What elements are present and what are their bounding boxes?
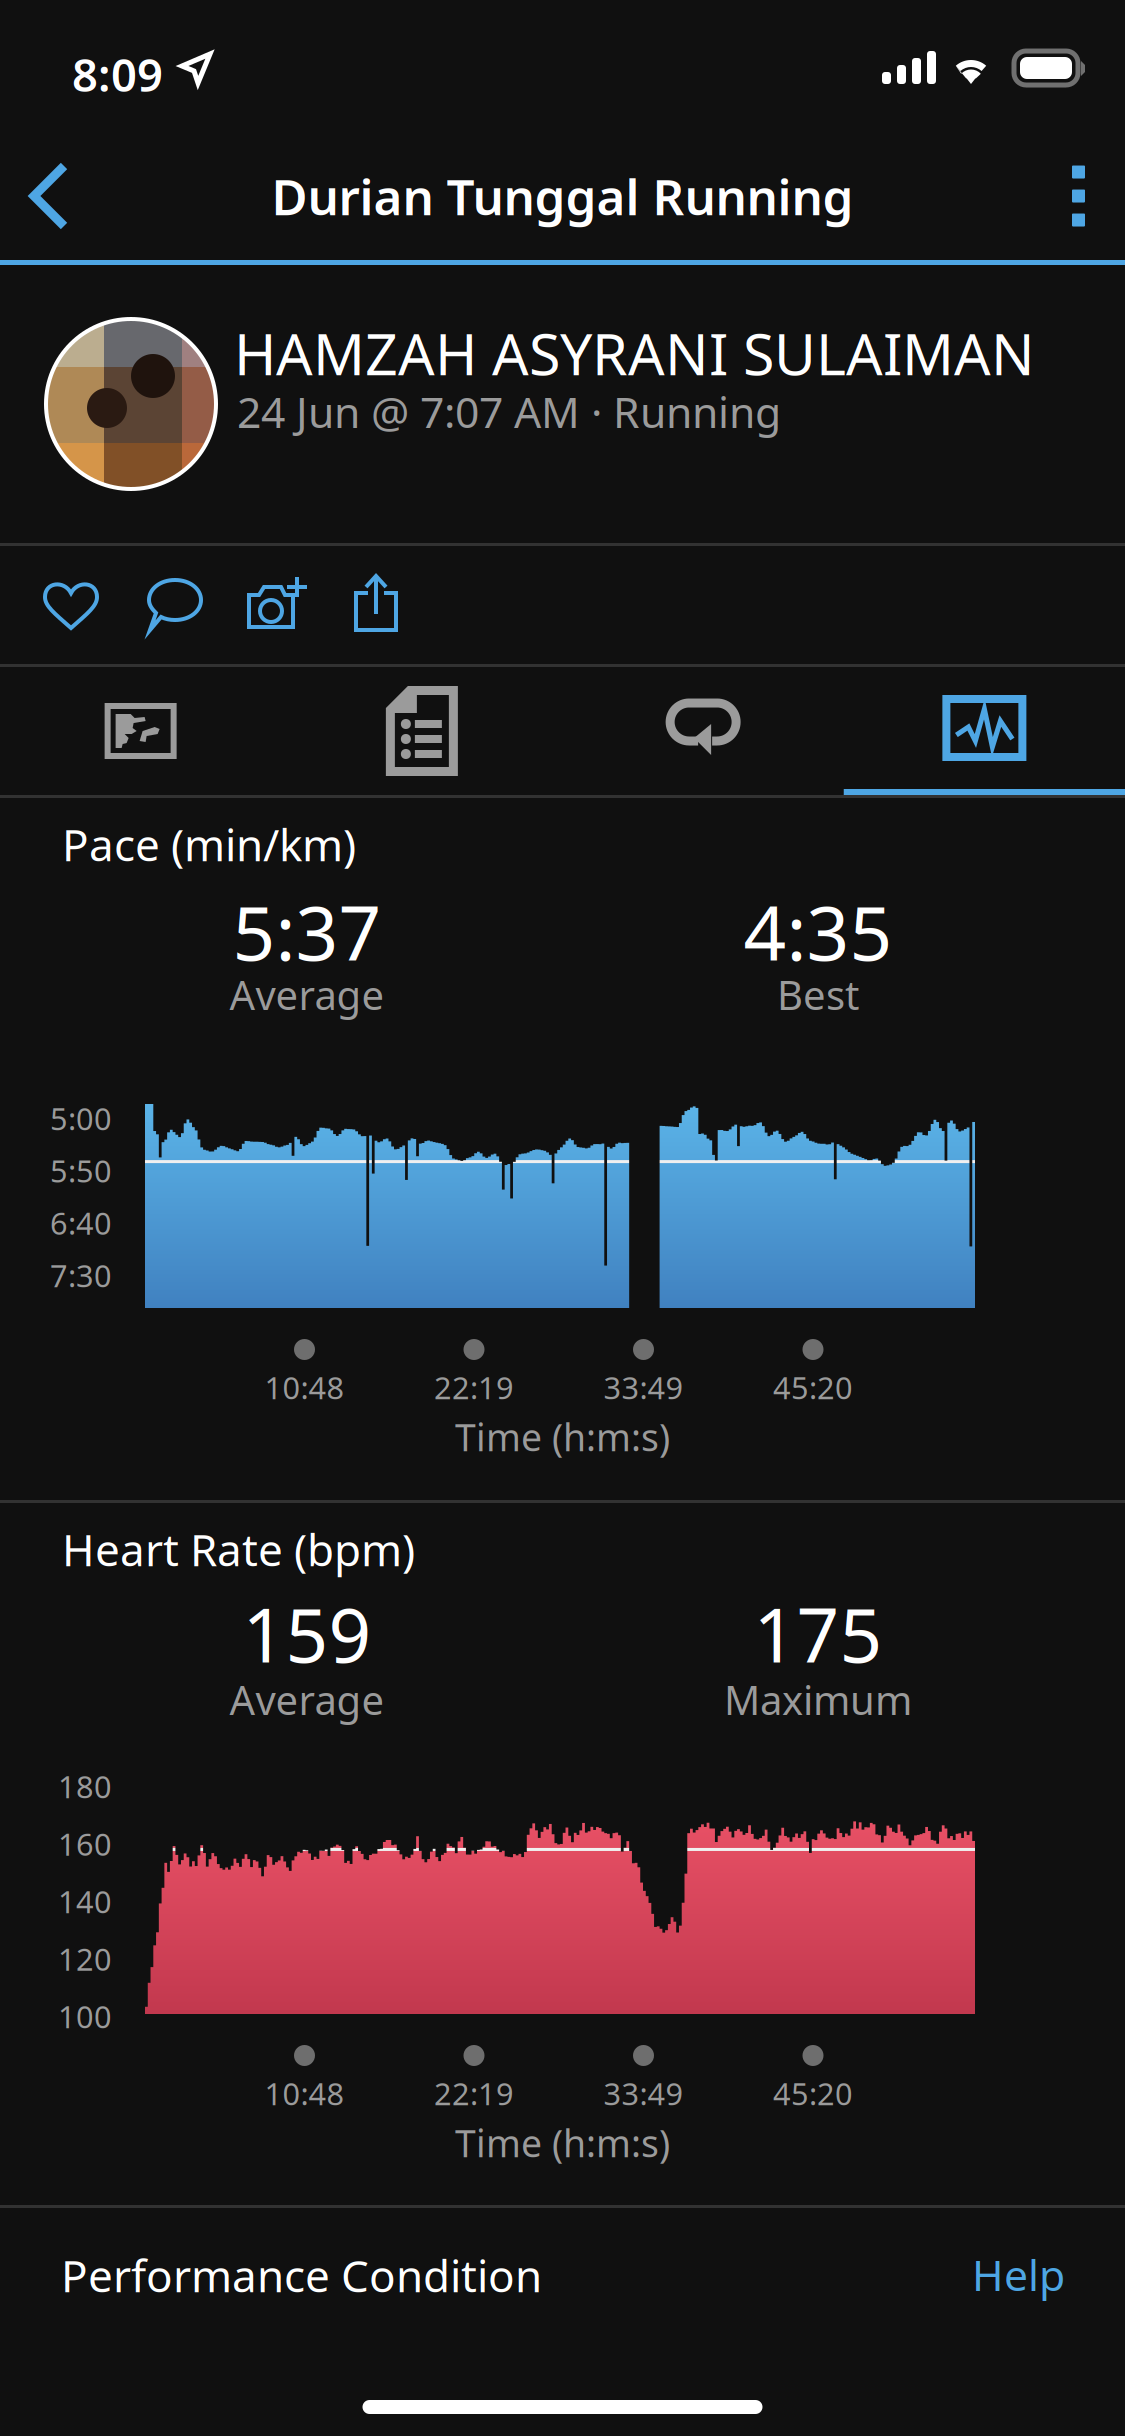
staticText: 180 <box>58 1766 112 1807</box>
button[interactable]: Splits <box>281 667 562 795</box>
button[interactable]: Share <box>0 546 44 604</box>
button[interactable]: Back <box>0 134 96 258</box>
staticText: Best <box>777 968 859 1021</box>
staticText: 6:40 <box>50 1203 112 1243</box>
staticText: Pace (min/km) <box>62 815 356 873</box>
staticText: 10:48 <box>264 2073 344 2114</box>
staticText: 5:37 <box>232 882 381 981</box>
staticText: 22:19 <box>434 2073 514 2114</box>
button[interactable]: Comment <box>0 546 60 602</box>
button[interactable]: Laps <box>562 667 844 795</box>
staticText: 140 <box>58 1881 112 1922</box>
button[interactable]: Help <box>0 2208 120 2265</box>
staticText: 8:09 <box>72 44 163 104</box>
staticText: Durian Tunggal Running <box>271 163 853 229</box>
staticText: 175 <box>753 1584 882 1683</box>
staticText: Maximum <box>724 1673 912 1726</box>
staticText: 22:19 <box>434 1367 514 1408</box>
staticText: 10:48 <box>264 1367 344 1408</box>
staticText: Heart Rate (bpm) <box>62 1520 415 1578</box>
staticText: Help <box>972 2246 1065 2303</box>
staticText: HAMZAH ASYRANI SULAIMAN <box>234 315 1035 391</box>
staticText: 160 <box>58 1823 112 1864</box>
staticText: 4:35 <box>743 882 892 981</box>
staticText: 7:30 <box>50 1255 112 1296</box>
staticText: Time (h:m:s) <box>455 1412 670 1462</box>
staticText: 45:20 <box>773 1367 853 1408</box>
button[interactable]: Add photo <box>0 546 62 602</box>
button[interactable]: More options <box>1032 137 1125 254</box>
staticText: Average <box>229 1673 384 1726</box>
staticText: 45:20 <box>773 2073 853 2114</box>
staticText: 24 Jun @ 7:07 AM · Running <box>237 383 781 440</box>
staticText: 5:00 <box>50 1098 112 1139</box>
staticText: Time (h:m:s) <box>455 2118 670 2168</box>
staticText: Average <box>229 968 384 1021</box>
staticText: Performance Condition <box>61 2246 542 2304</box>
staticText: 33:49 <box>603 2073 683 2114</box>
button[interactable]: Map <box>0 667 281 795</box>
staticText: 120 <box>58 1938 112 1979</box>
staticText: 159 <box>242 1584 371 1683</box>
staticText: 5:50 <box>50 1150 112 1191</box>
button[interactable]: Like <box>0 546 62 600</box>
staticText: 33:49 <box>603 1367 683 1408</box>
button[interactable]: Charts <box>844 667 1125 795</box>
staticText: 100 <box>58 1996 112 2037</box>
